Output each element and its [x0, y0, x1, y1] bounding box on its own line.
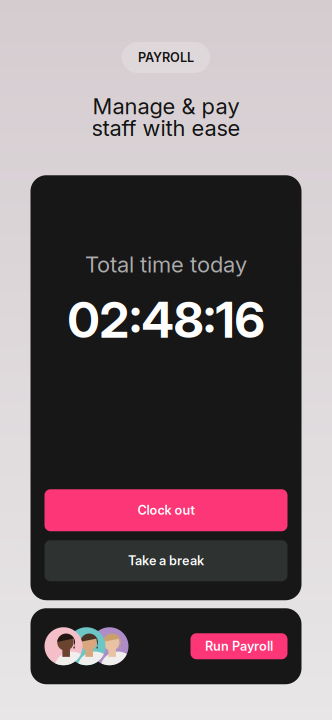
staticText: Run Payroll — [205, 639, 273, 654]
button[interactable]: Run Payroll — [190, 633, 287, 659]
staticText: PAYROLL — [138, 50, 194, 65]
staticText: staff with ease — [91, 115, 240, 141]
staticText: Manage & pay — [92, 93, 239, 120]
staticText: 02:48:16 — [67, 290, 264, 350]
button[interactable]: Take a break — [44, 540, 287, 581]
button[interactable]: PAYROLL — [122, 42, 210, 73]
staticText: Total time today — [85, 251, 247, 278]
button[interactable]: Clock out — [44, 489, 287, 531]
staticText: Clock out — [137, 503, 194, 518]
staticText: Take a break — [128, 553, 204, 568]
